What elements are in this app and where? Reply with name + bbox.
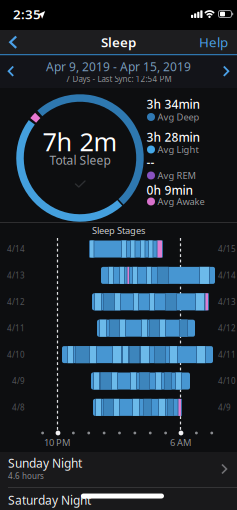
staticText: Apr 9, 2019 - Apr 15, 2019 bbox=[46, 58, 191, 74]
staticText: Sleep Stages bbox=[92, 224, 145, 237]
staticText: 0h 9min bbox=[146, 182, 193, 198]
staticText: 4/10 bbox=[7, 349, 25, 360]
staticText: Avg Light bbox=[157, 143, 198, 156]
staticText: 4/11 bbox=[7, 323, 25, 333]
staticText: 4/11 bbox=[218, 349, 236, 360]
staticText: 3h 34min bbox=[146, 96, 200, 112]
staticText: 4.6 hours bbox=[8, 471, 44, 481]
staticText: 7h 2m bbox=[42, 125, 117, 158]
staticText: 2:35 bbox=[13, 5, 41, 23]
button[interactable]: Help bbox=[188, 33, 228, 51]
staticText: 4/13 bbox=[218, 296, 236, 307]
staticText: Saturday Night bbox=[8, 492, 91, 508]
staticText: 4/8 bbox=[12, 402, 25, 413]
staticText: Avg Deep bbox=[157, 111, 199, 123]
staticText: 4/9 bbox=[12, 376, 25, 386]
staticText: Sleep bbox=[101, 33, 136, 51]
button[interactable]: Back bbox=[0, 30, 28, 54]
staticText: 4/14 bbox=[7, 244, 25, 254]
staticText: Sunday Night bbox=[8, 455, 82, 471]
staticText: Help bbox=[199, 33, 228, 51]
staticText: 7 Days - Last Sync: 12:54 PM bbox=[65, 74, 171, 84]
staticText: 4/14 bbox=[218, 270, 236, 281]
staticText: Avg REM bbox=[157, 169, 195, 182]
staticText: Total Sleep bbox=[49, 152, 110, 168]
staticText: -- bbox=[146, 154, 154, 170]
button[interactable]: Next week bbox=[219, 64, 233, 78]
button[interactable]: Saturday Night bbox=[0, 488, 237, 510]
staticText: 4/12 bbox=[7, 296, 25, 307]
staticText: Avg Awake bbox=[157, 195, 204, 208]
staticText: 4/9 bbox=[218, 402, 231, 413]
staticText: 3h 28min bbox=[146, 129, 200, 145]
staticText: 4/10 bbox=[218, 376, 236, 386]
staticText: 4/13 bbox=[7, 270, 25, 281]
button[interactable]: Sunday Night bbox=[0, 452, 237, 486]
staticText: 6 AM bbox=[170, 436, 191, 449]
staticText: 4/12 bbox=[218, 323, 236, 333]
staticText: 4/15 bbox=[218, 244, 236, 254]
button[interactable]: Previous week bbox=[4, 64, 18, 78]
staticText: 10 PM bbox=[44, 436, 70, 449]
